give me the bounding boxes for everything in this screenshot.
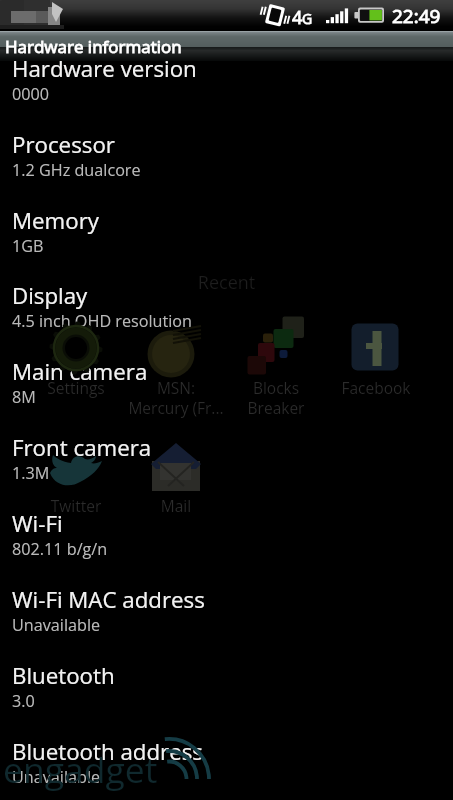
staticText: Front camera xyxy=(12,432,152,462)
staticText: Unavailable xyxy=(12,614,101,636)
staticText: Wi-Fi xyxy=(12,508,63,538)
staticText: Facebook xyxy=(326,377,426,398)
staticText: Twitter xyxy=(26,495,126,516)
button[interactable]: Wi-Fi MAC address xyxy=(0,584,453,636)
staticText: engadget xyxy=(3,745,158,793)
staticText: 4 xyxy=(292,5,303,30)
button[interactable]: Facebook xyxy=(326,377,426,398)
button[interactable]: Main camera xyxy=(0,356,453,408)
staticText: 4.5 inch QHD resolution xyxy=(12,310,193,332)
button[interactable]: Blocks Breaker xyxy=(226,377,326,419)
staticText: G xyxy=(302,9,313,28)
button[interactable]: Processor xyxy=(0,129,453,181)
staticText: Recent xyxy=(0,270,453,295)
button[interactable]: Mail xyxy=(126,495,226,516)
button[interactable]: Memory xyxy=(0,205,453,257)
staticText: 802.11 b/g/n xyxy=(12,538,108,560)
staticText: Bluetooth address xyxy=(12,736,203,766)
button[interactable]: Display xyxy=(0,280,453,332)
staticText: Bluetooth xyxy=(12,660,115,690)
staticText: Memory xyxy=(12,205,99,235)
staticText: Wi-Fi MAC address xyxy=(12,584,205,614)
button[interactable]: MSN: Mercury (Fr... xyxy=(126,377,226,419)
staticText: MSN: Mercury (Fr... xyxy=(126,377,226,419)
button[interactable]: Twitter xyxy=(26,495,126,516)
button[interactable]: Bluetooth xyxy=(0,660,453,712)
staticText: Hardware information xyxy=(5,35,182,58)
button[interactable]: Status bar xyxy=(0,0,453,31)
button[interactable]: Front camera xyxy=(0,432,453,484)
staticText: Display xyxy=(12,280,88,310)
button[interactable]: Wi-Fi xyxy=(0,508,453,560)
staticText: 22:49 xyxy=(392,3,441,29)
staticText: 1.2 GHz dualcore xyxy=(12,159,141,181)
staticText: Mail xyxy=(126,495,226,516)
staticText: 1GB xyxy=(12,235,44,257)
staticText: 0000 xyxy=(12,83,50,105)
staticText: 1.3M xyxy=(12,462,50,484)
staticText: Processor xyxy=(12,129,115,159)
staticText: Main camera xyxy=(12,356,148,386)
button[interactable]: Bluetooth address xyxy=(0,736,453,788)
staticText: Hardware version xyxy=(12,53,197,83)
button[interactable]: Settings xyxy=(26,377,126,398)
button[interactable]: Hardware version xyxy=(0,53,453,105)
staticText: Settings xyxy=(26,377,126,398)
staticText: 8M xyxy=(12,386,36,408)
staticText: Blocks Breaker xyxy=(226,377,326,419)
staticText: Unavailable xyxy=(12,766,101,788)
staticText: 3.0 xyxy=(12,690,35,712)
